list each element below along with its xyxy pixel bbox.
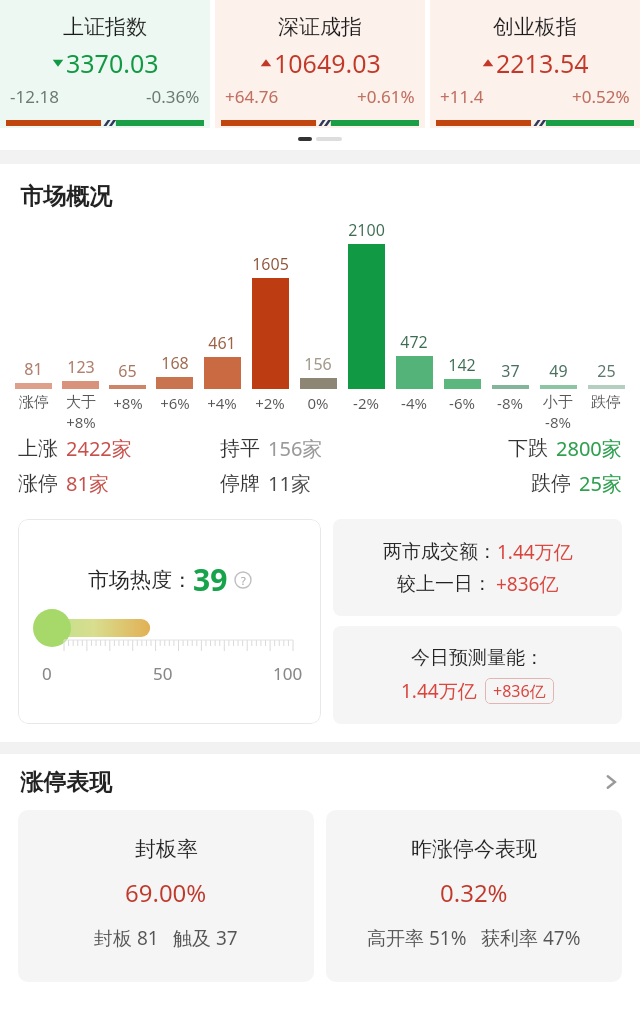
button[interactable]: 昨涨停今表现 [326, 810, 622, 982]
button[interactable]: 今日预测量能： [333, 626, 622, 724]
staticText: 深证成指 [278, 14, 362, 40]
staticText: 高开率 51% [367, 925, 467, 951]
staticText: 昨涨停今表现 [411, 836, 537, 862]
staticText: 65 [118, 360, 137, 382]
staticText: +6% [160, 393, 190, 413]
staticText: 123 [67, 356, 95, 378]
staticText: 封板 81 [94, 925, 159, 951]
staticText: -8% [545, 412, 571, 431]
staticText: -0.36% [146, 85, 200, 108]
button[interactable]: 上证指数 [0, 0, 210, 128]
staticText: 封板率 [135, 836, 198, 862]
staticText: 上涨 [18, 436, 58, 461]
button[interactable]: 封板率 [18, 810, 314, 982]
staticText: 100 [273, 662, 303, 685]
button[interactable]: 涨停表现 [0, 754, 640, 810]
staticText: +0.61% [357, 85, 415, 108]
staticText: 下跌 [508, 436, 548, 461]
staticText: +4% [207, 393, 237, 413]
staticText: 2422家 [66, 435, 132, 462]
staticText: 跌停 [531, 471, 571, 496]
button[interactable]: 创业板指 [430, 0, 640, 128]
staticText: 小于 [543, 393, 573, 412]
staticText: 两市成交额： [383, 540, 497, 564]
staticText: 上证指数 [63, 14, 147, 40]
staticText: 较上一日： [397, 572, 492, 596]
staticText: 81 [24, 358, 43, 380]
button[interactable]: 市场热度： [18, 519, 321, 724]
staticText: -2% [353, 393, 379, 413]
staticText: +8% [66, 412, 96, 431]
staticText: 2213.54 [496, 46, 589, 80]
staticText: 10649.03 [274, 46, 381, 80]
button[interactable]: 帮助 [234, 571, 252, 589]
staticText: 168 [161, 352, 189, 374]
staticText: +64.76 [225, 85, 279, 108]
staticText: 50 [153, 662, 173, 685]
staticText: 81家 [66, 470, 109, 497]
staticText: 69.00% [125, 876, 207, 909]
staticText: 市场热度： [88, 567, 193, 593]
staticText: 跌停 [591, 393, 621, 412]
staticText: 37 [501, 360, 520, 382]
staticText: ? [241, 573, 246, 588]
button[interactable]: 两市成交额： [333, 519, 622, 616]
staticText: 涨停 [19, 393, 49, 412]
staticText: 156 [304, 353, 332, 375]
staticText: 39 [193, 559, 228, 600]
staticText: 3370.03 [66, 46, 159, 80]
staticText: +8% [113, 393, 143, 413]
staticText: 472 [400, 331, 428, 353]
staticText: 1605 [252, 253, 289, 275]
staticText: 获利率 47% [481, 925, 581, 951]
staticText: 市场概况 [20, 182, 112, 211]
staticText: 2100 [348, 219, 385, 241]
staticText: 25 [597, 360, 616, 382]
staticText: 涨停表现 [20, 768, 112, 797]
staticText: -8% [497, 393, 523, 413]
staticText: +836亿 [493, 680, 546, 702]
staticText: +836亿 [496, 571, 559, 597]
staticText: -4% [401, 393, 427, 413]
staticText: 49 [549, 360, 568, 382]
staticText: +11.4 [440, 85, 484, 108]
staticText: 0% [307, 393, 329, 413]
staticText: 0.32% [440, 876, 508, 909]
staticText: 11家 [268, 470, 311, 497]
staticText: +0.52% [572, 85, 630, 108]
staticText: 1.44万亿 [401, 678, 477, 704]
button[interactable]: 深证成指 [215, 0, 425, 128]
staticText: 大于 [66, 393, 96, 412]
staticText: 461 [208, 332, 236, 354]
staticText: 停牌 [220, 471, 260, 496]
staticText: 0 [42, 662, 52, 685]
staticText: 1.44万亿 [497, 539, 573, 565]
staticText: 2800家 [556, 435, 622, 462]
staticText: 156家 [268, 435, 323, 462]
staticText: 142 [448, 354, 476, 376]
staticText: 今日预测量能： [411, 646, 544, 670]
staticText: +2% [255, 393, 285, 413]
staticText: 持平 [220, 436, 260, 461]
staticText: 涨停 [18, 471, 58, 496]
staticText: 触及 37 [173, 925, 238, 951]
staticText: -12.18 [10, 85, 59, 108]
other: 更多 [602, 773, 620, 791]
staticText: -6% [449, 393, 475, 413]
staticText: 25家 [579, 470, 622, 497]
staticText: 创业板指 [493, 14, 577, 40]
